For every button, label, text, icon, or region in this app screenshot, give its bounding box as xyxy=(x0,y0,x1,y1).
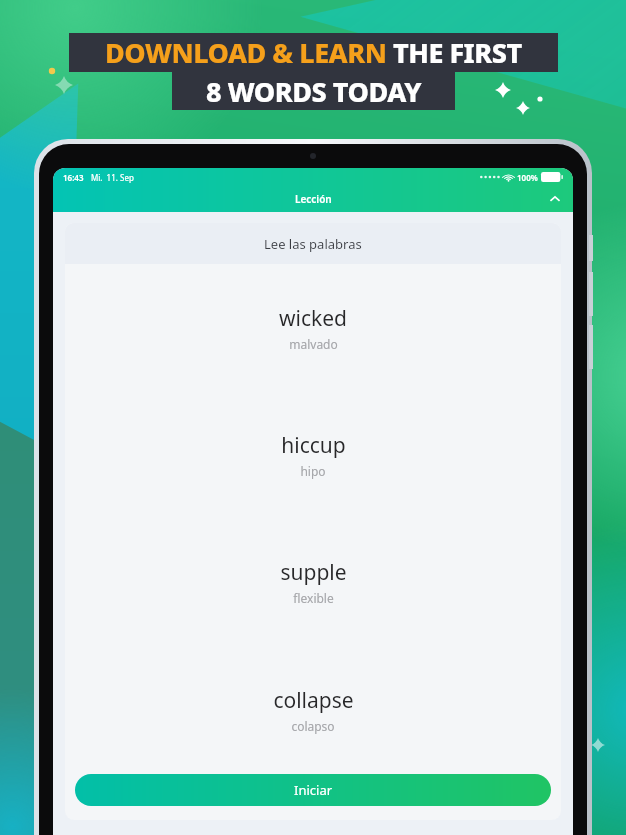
staticText: DOWNLOAD & LEARN xyxy=(105,34,393,71)
staticText: hiccup xyxy=(281,431,346,460)
staticText: 8 WORDS TODAY xyxy=(206,73,422,110)
staticText: Iniciar xyxy=(294,781,333,799)
staticText: supple xyxy=(280,558,347,587)
staticText: collapse xyxy=(273,686,354,715)
button[interactable]: supple xyxy=(65,518,561,646)
button[interactable]: wicked xyxy=(65,264,561,391)
staticText: Lección xyxy=(295,192,332,206)
button[interactable]: collapse xyxy=(65,646,561,774)
staticText: Lee las palabras xyxy=(264,235,362,253)
button[interactable]: Iniciar xyxy=(75,774,551,806)
staticText: flexible xyxy=(293,590,334,606)
staticText: colapso xyxy=(291,718,335,734)
staticText: THE FIRST xyxy=(393,34,522,71)
staticText: Mi. 11. Sep xyxy=(91,172,134,183)
button[interactable]: Collapse xyxy=(545,189,565,209)
staticText: wicked xyxy=(279,304,347,333)
staticText: 16:43 xyxy=(63,172,84,183)
button[interactable]: hiccup xyxy=(65,391,561,518)
staticText: 100% xyxy=(517,172,538,183)
staticText: hipo xyxy=(300,463,326,479)
staticText: malvado xyxy=(289,336,338,352)
